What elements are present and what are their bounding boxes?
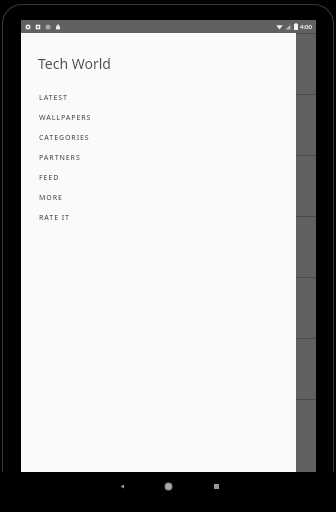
- button[interactable]: PARTNERS: [21, 148, 296, 168]
- button[interactable]: RATE IT: [21, 208, 296, 228]
- staticText: MORE: [39, 193, 63, 203]
- button[interactable]: Home: [158, 476, 178, 496]
- button[interactable]: CATEGORIES: [21, 128, 296, 148]
- staticText: CATEGORIES: [39, 133, 90, 143]
- staticText: PARTNERS: [39, 153, 81, 163]
- staticText: 4:00: [300, 23, 312, 31]
- staticText: LATEST: [39, 93, 68, 103]
- button[interactable]: WALLPAPERS: [21, 108, 296, 128]
- staticText: WALLPAPERS: [39, 113, 92, 123]
- staticText: FEED: [39, 173, 60, 183]
- button[interactable]: MORE: [21, 188, 296, 208]
- button[interactable]: Back: [112, 476, 132, 496]
- button[interactable]: LATEST: [21, 88, 296, 108]
- button[interactable]: FEED: [21, 168, 296, 188]
- button[interactable]: Recent apps: [206, 476, 226, 496]
- staticText: RATE IT: [39, 213, 70, 223]
- staticText: Tech World: [38, 54, 111, 73]
